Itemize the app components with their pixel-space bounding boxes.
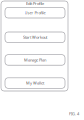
- staticText: My Wallet: [26, 80, 44, 86]
- button[interactable]: My Wallet: [5, 78, 65, 88]
- staticText: FIG. 4: [69, 111, 79, 116]
- button[interactable]: Start Workout: [5, 32, 65, 42]
- button[interactable]: Manage Plan: [5, 55, 65, 65]
- staticText: Manage Plan: [24, 57, 46, 63]
- staticText: User Profile: [24, 10, 45, 15]
- staticText: Start Workout: [23, 34, 47, 40]
- button[interactable]: User Profile: [5, 7, 65, 18]
- staticText: Edit Profile: [26, 1, 44, 6]
